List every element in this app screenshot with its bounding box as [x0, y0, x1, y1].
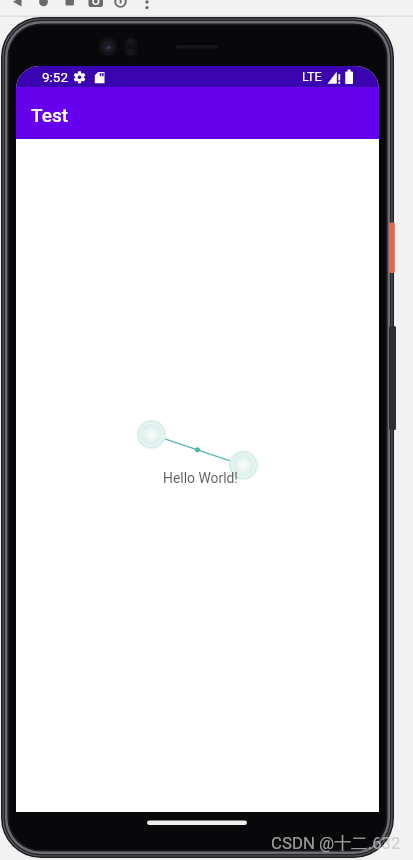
staticText: Hello World! — [163, 470, 238, 486]
staticText: CSDN @十二.632 — [271, 833, 401, 854]
staticText: LTE — [302, 69, 322, 84]
staticText: 9:52 — [42, 69, 69, 85]
button[interactable]: Test — [16, 87, 379, 139]
staticText: Test — [31, 104, 69, 126]
